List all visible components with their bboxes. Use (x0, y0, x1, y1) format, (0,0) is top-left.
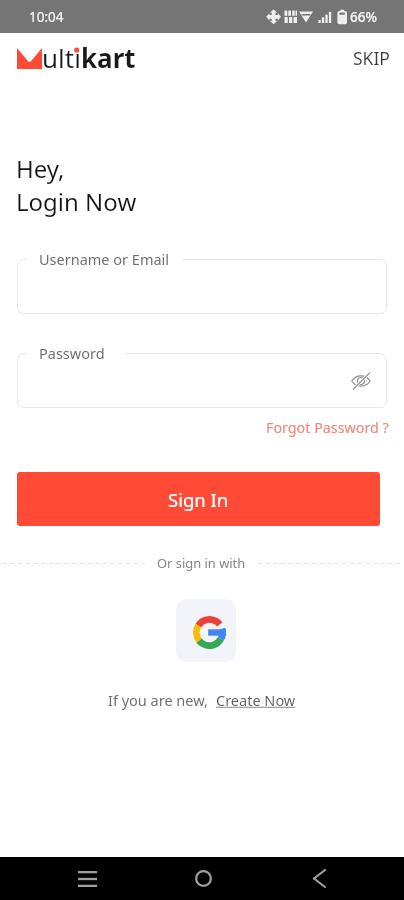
button[interactable]: Home (173, 857, 233, 900)
button[interactable]: Sign In (17, 472, 380, 526)
button[interactable]: Recent apps (57, 857, 117, 900)
staticText: 66% (350, 8, 377, 26)
staticText: SKIP (353, 46, 390, 70)
button[interactable]: Sign in with Google (176, 599, 236, 662)
button[interactable]: Username or Email (17, 259, 387, 314)
button[interactable]: Forgot Password ? (264, 418, 391, 437)
staticText: Password (39, 343, 105, 363)
staticText: Sign In (168, 487, 229, 512)
button[interactable]: SKIP (348, 41, 395, 75)
button[interactable]: Toggle password visibility (347, 367, 375, 395)
button[interactable]: Create Now (216, 690, 296, 710)
staticText: ulti (42, 40, 81, 75)
button[interactable]: Password (17, 353, 387, 408)
staticText: kart (81, 40, 136, 75)
staticText: Hey, (16, 152, 65, 185)
button[interactable]: Back (289, 857, 349, 900)
staticText: 10:04 (29, 8, 64, 26)
staticText: Username or Email (39, 249, 170, 269)
staticText: Or sign in with (157, 554, 246, 572)
staticText: If you are new, (108, 690, 216, 710)
staticText: Login Now (16, 185, 137, 218)
